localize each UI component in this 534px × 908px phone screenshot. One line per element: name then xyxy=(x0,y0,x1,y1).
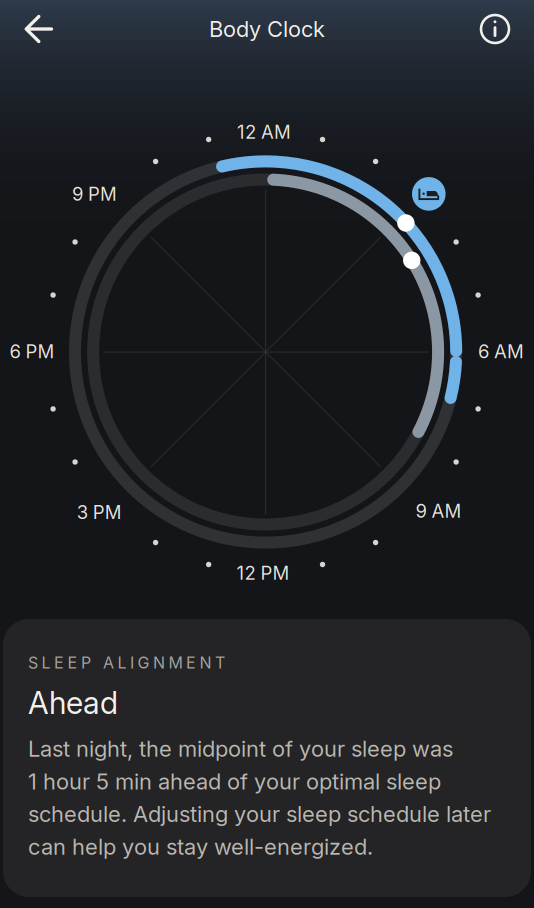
staticText: 9 PM xyxy=(72,183,117,205)
staticText: 6 AM xyxy=(478,340,524,363)
staticText: 9 AM xyxy=(416,500,462,522)
staticText: Last night, the midpoint of your sleep w… xyxy=(28,735,491,860)
staticText: Body Clock xyxy=(209,16,325,42)
button[interactable]: Information xyxy=(468,2,522,56)
button[interactable]: Back xyxy=(12,2,66,56)
staticText: 3 PM xyxy=(77,501,122,523)
staticText: 12 PM xyxy=(236,562,289,584)
staticText: 12 AM xyxy=(237,121,291,143)
staticText: Ahead xyxy=(28,684,118,721)
staticText: SLEEP ALIGNMENT xyxy=(28,653,225,672)
staticText: 6 PM xyxy=(9,340,54,363)
